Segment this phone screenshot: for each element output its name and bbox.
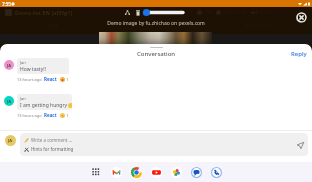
staticText: Write a comment ... [31, 137, 73, 143]
staticText: 1 [66, 77, 69, 82]
staticText: Reply [291, 50, 307, 58]
staticText: 1 [66, 113, 69, 118]
button[interactable]: Phone [206, 162, 226, 182]
button[interactable]: Reply [290, 49, 308, 59]
staticText: React [44, 112, 57, 118]
button[interactable]: React [44, 112, 57, 118]
staticText: 13 hours ago [17, 77, 42, 82]
button[interactable]: Write a comment ... [20, 133, 308, 156]
staticText: Jan [20, 60, 26, 65]
staticText: Hints for formatting [31, 146, 74, 152]
staticText: Demo image by fu.zhichao on pexels.com [0, 20, 312, 27]
button[interactable]: Jan [17, 58, 69, 74]
staticText: Jan [20, 96, 26, 101]
button[interactable]: YouTube [146, 162, 166, 182]
button[interactable]: Close [295, 11, 307, 23]
button[interactable]: React [44, 76, 57, 82]
button[interactable]: Photos [166, 162, 186, 182]
button[interactable]: Jan [17, 94, 72, 110]
staticText: Demo list EN [xf3fg1] [15, 9, 73, 16]
staticText: 13 hours ago [17, 113, 42, 118]
staticText: Conversation [137, 50, 176, 58]
button[interactable]: Share [124, 9, 131, 16]
staticText: How tasty!! [20, 66, 46, 73]
button[interactable]: Messages [186, 162, 206, 182]
button[interactable]: Apps [86, 162, 106, 182]
staticText: JA [7, 63, 12, 68]
staticText: JA [8, 138, 13, 143]
button[interactable]: Chrome [126, 162, 146, 182]
button[interactable]: Send [295, 140, 305, 150]
button[interactable]: Gmail [106, 162, 126, 182]
button[interactable]: Delete [134, 9, 141, 16]
staticText: React [44, 76, 57, 82]
staticText: 7:55 [2, 1, 11, 7]
staticText: I am getting hungry [20, 102, 67, 109]
staticText: JA [7, 99, 12, 104]
